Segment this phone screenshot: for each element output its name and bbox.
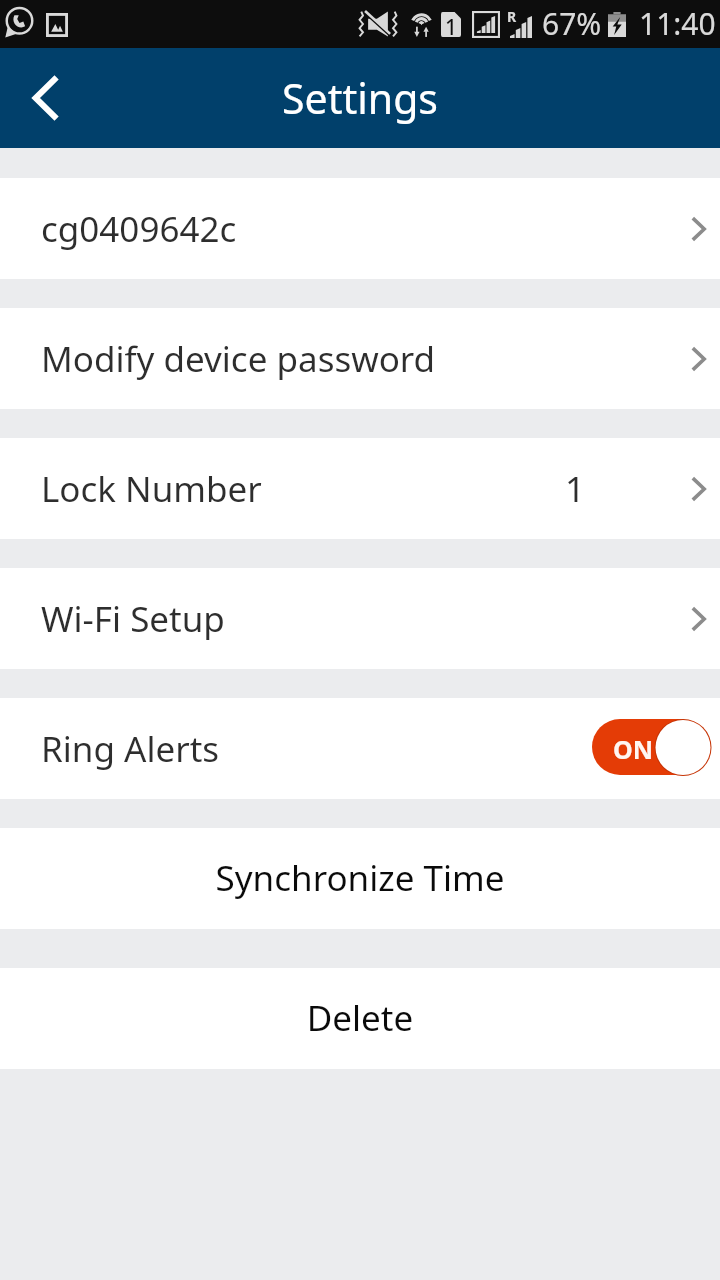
button[interactable]: Synchronize Time: [0, 828, 720, 929]
staticText: Lock Number: [41, 465, 262, 513]
staticText: cg0409642c: [41, 205, 237, 253]
button[interactable]: cg0409642c: [0, 178, 720, 279]
button[interactable]: Ring Alerts: [0, 698, 720, 799]
staticText: Settings: [282, 70, 439, 126]
staticText: 1: [441, 13, 461, 42]
button[interactable]: Lock Number: [0, 438, 720, 539]
staticText: 67%: [542, 3, 602, 44]
staticText: R: [507, 7, 517, 26]
staticText: 11:40: [639, 3, 716, 44]
button[interactable]: Wi-Fi Setup: [0, 568, 720, 669]
button[interactable]: Back: [0, 48, 90, 148]
staticText: 1: [545, 465, 605, 513]
staticText: ON: [613, 732, 654, 766]
button[interactable]: Delete: [0, 968, 720, 1069]
staticText: Synchronize Time: [0, 854, 720, 902]
staticText: Ring Alerts: [41, 725, 220, 773]
staticText: Modify device password: [41, 335, 436, 383]
staticText: Delete: [0, 994, 720, 1042]
button[interactable]: Ring Alerts, on: [592, 720, 710, 778]
button[interactable]: Modify device password: [0, 308, 720, 409]
staticText: Wi-Fi Setup: [41, 595, 225, 643]
